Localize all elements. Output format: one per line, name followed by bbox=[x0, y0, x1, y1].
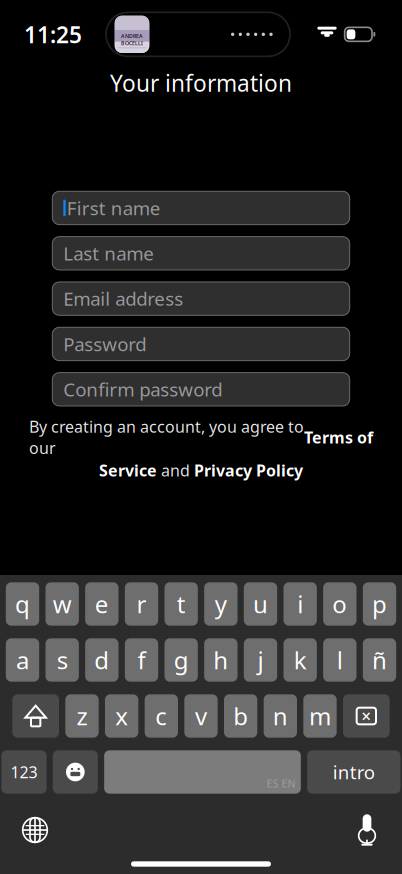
staticText: w bbox=[53, 588, 72, 620]
button[interactable]: z bbox=[65, 694, 99, 738]
staticText: l bbox=[337, 644, 343, 676]
button[interactable]: a bbox=[6, 638, 39, 682]
button[interactable]: Space bbox=[104, 750, 301, 794]
button[interactable]: p bbox=[363, 582, 396, 626]
button[interactable]: h bbox=[204, 638, 237, 682]
button[interactable]: w bbox=[45, 582, 79, 626]
button[interactable]: x bbox=[105, 694, 138, 738]
button[interactable]: s bbox=[45, 638, 79, 682]
staticText: Privacy Policy bbox=[194, 460, 303, 481]
staticText: Terms of bbox=[304, 427, 373, 448]
staticText: x bbox=[115, 700, 128, 732]
staticText: o bbox=[332, 588, 347, 620]
staticText: × bbox=[361, 704, 371, 727]
staticText: Password bbox=[63, 332, 146, 356]
staticText: ES EN bbox=[266, 776, 295, 790]
button[interactable]: n bbox=[264, 694, 297, 738]
button[interactable]: By creating an account, you agree to our bbox=[21, 416, 381, 481]
button[interactable]: m bbox=[303, 694, 337, 738]
button[interactable]: o bbox=[323, 582, 356, 626]
button[interactable]: Dictation bbox=[342, 810, 392, 850]
staticText: u bbox=[253, 588, 268, 620]
button[interactable]: 123 bbox=[1, 750, 46, 794]
staticText: 123 bbox=[10, 761, 37, 783]
staticText: k bbox=[294, 644, 307, 676]
staticText: z bbox=[76, 700, 87, 732]
staticText: intro bbox=[333, 760, 375, 784]
staticText: e bbox=[95, 588, 109, 620]
button[interactable]: ñ bbox=[363, 638, 396, 682]
button[interactable]: Password bbox=[52, 327, 350, 361]
staticText: ANDREA BOCELLI bbox=[121, 32, 143, 47]
staticText: p bbox=[372, 588, 387, 620]
button[interactable]: e bbox=[85, 582, 118, 626]
staticText: Service bbox=[99, 460, 157, 481]
button[interactable]: Emoji bbox=[53, 750, 98, 794]
staticText: 11:25 bbox=[24, 19, 82, 49]
button[interactable]: v bbox=[184, 694, 218, 738]
button[interactable]: Delete bbox=[343, 694, 390, 738]
staticText: f bbox=[137, 644, 145, 676]
staticText: i bbox=[297, 588, 303, 620]
button[interactable]: First name bbox=[52, 191, 350, 225]
staticText: and bbox=[157, 460, 194, 481]
staticText: q bbox=[15, 588, 30, 620]
staticText: Confirm password bbox=[63, 377, 222, 402]
button[interactable]: intro bbox=[307, 750, 400, 794]
button[interactable]: k bbox=[283, 638, 317, 682]
staticText: First name bbox=[67, 196, 161, 220]
button[interactable]: Last name bbox=[52, 237, 350, 270]
button[interactable]: i bbox=[283, 582, 317, 626]
staticText: m bbox=[309, 700, 331, 732]
staticText: r bbox=[136, 588, 146, 620]
staticText: s bbox=[57, 644, 68, 676]
staticText: b bbox=[233, 700, 248, 732]
staticText: Email address bbox=[63, 286, 183, 311]
button[interactable]: u bbox=[244, 582, 277, 626]
staticText: h bbox=[213, 644, 228, 676]
staticText: t bbox=[177, 588, 186, 620]
button[interactable]: Next keyboard bbox=[10, 810, 60, 850]
staticText: Your information bbox=[110, 68, 292, 98]
staticText: n bbox=[273, 700, 288, 732]
staticText: a bbox=[16, 644, 29, 676]
button[interactable]: j bbox=[244, 638, 277, 682]
button[interactable]: y bbox=[204, 582, 237, 626]
staticText: g bbox=[174, 644, 189, 676]
button[interactable]: Email address bbox=[52, 282, 350, 315]
button[interactable]: Confirm password bbox=[52, 373, 350, 406]
staticText: j bbox=[257, 644, 263, 676]
button[interactable]: r bbox=[125, 582, 158, 626]
button[interactable]: q bbox=[6, 582, 39, 626]
button[interactable]: b bbox=[224, 694, 257, 738]
button[interactable]: f bbox=[125, 638, 158, 682]
staticText: ñ bbox=[372, 644, 387, 676]
button[interactable]: t bbox=[164, 582, 198, 626]
button[interactable]: l bbox=[323, 638, 356, 682]
staticText: c bbox=[155, 700, 167, 732]
button[interactable]: Shift bbox=[12, 694, 59, 738]
staticText: Last name bbox=[63, 241, 154, 266]
button[interactable]: c bbox=[145, 694, 178, 738]
staticText: By creating an account, you agree to our bbox=[29, 416, 304, 458]
button[interactable]: g bbox=[164, 638, 198, 682]
staticText: d bbox=[94, 644, 109, 676]
staticText: v bbox=[195, 700, 207, 732]
button[interactable]: d bbox=[85, 638, 118, 682]
staticText: y bbox=[215, 588, 227, 620]
